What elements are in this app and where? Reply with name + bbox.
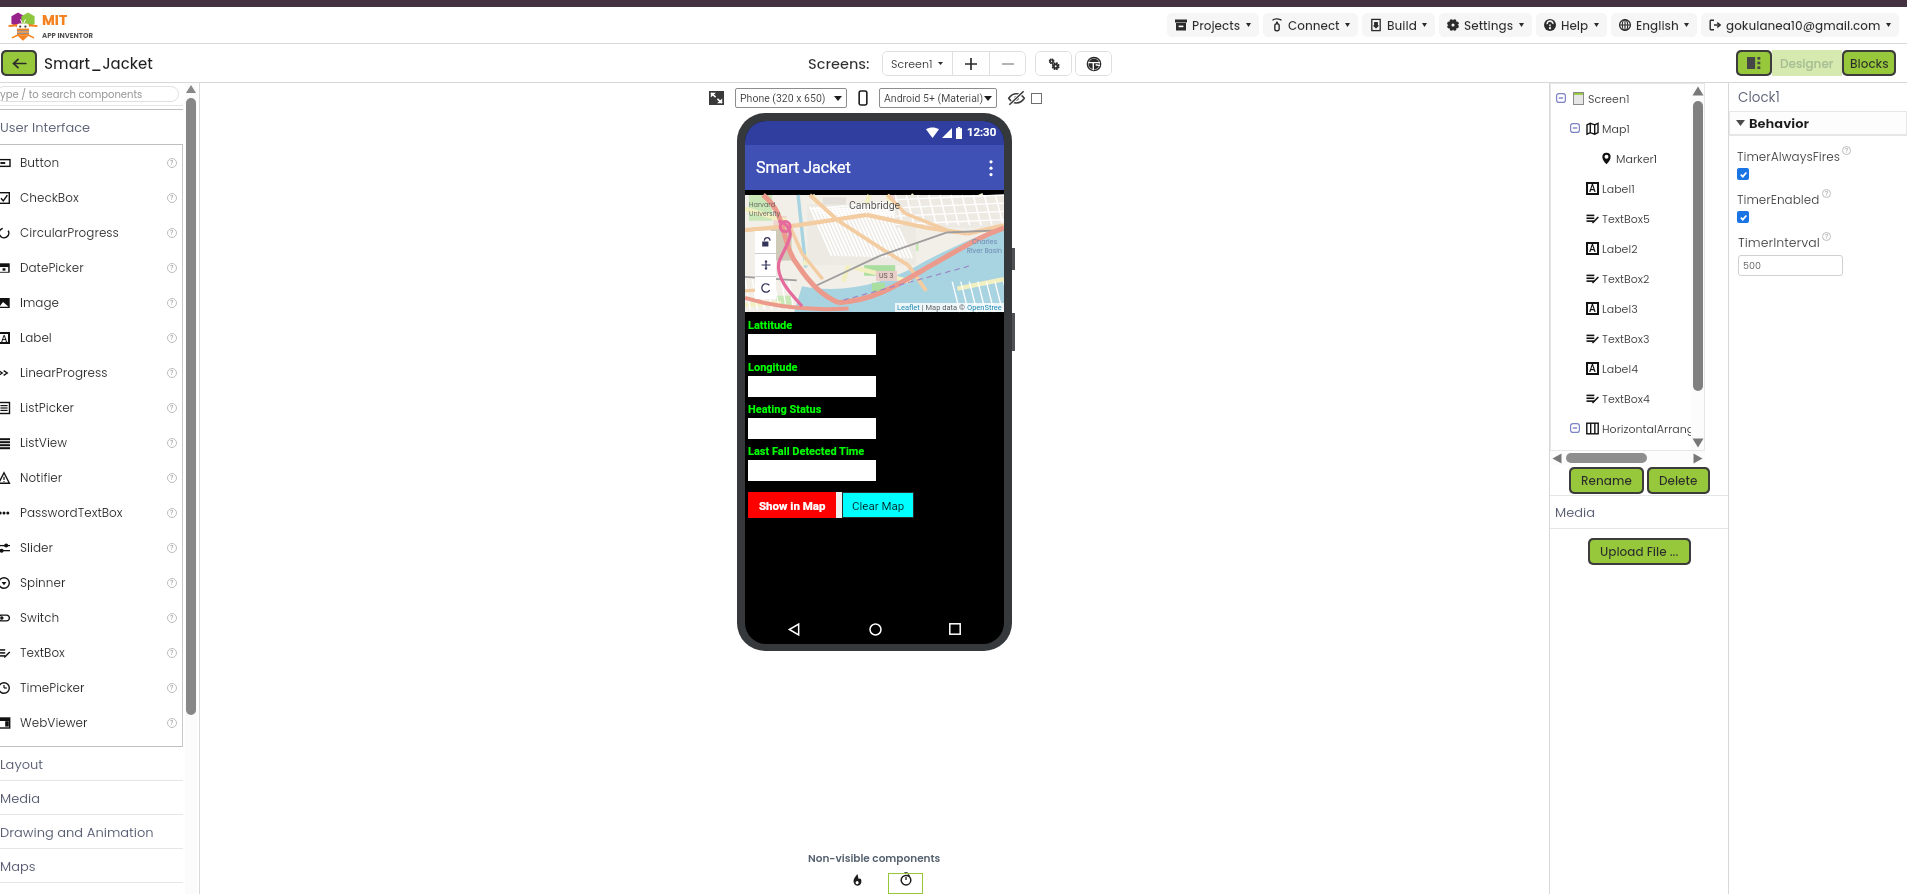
staticText: University <box>749 209 781 218</box>
button[interactable]: User Interface <box>0 110 183 144</box>
staticText: User Interface <box>0 118 91 136</box>
staticText: ? <box>170 544 174 552</box>
button[interactable]: Map control <box>755 254 776 276</box>
button[interactable]: Project properties <box>1035 51 1072 76</box>
staticText: ? <box>170 159 174 167</box>
button[interactable]: 500 <box>1738 255 1843 276</box>
button[interactable]: CheckBox <box>0 180 183 215</box>
staticText: ? <box>170 404 174 412</box>
button[interactable]: Screen1 <box>1550 83 1705 113</box>
button[interactable]: A <box>1550 293 1705 323</box>
button[interactable]: Map control <box>755 231 776 253</box>
staticText: WebViewer <box>20 714 88 731</box>
staticText: 500 <box>1743 259 1761 272</box>
button[interactable]: Button <box>0 145 183 180</box>
button[interactable]: TimerAlwaysFires <box>1737 168 1749 180</box>
staticText: Last Fall Detected Time <box>748 445 865 458</box>
button[interactable]: A <box>1550 353 1705 383</box>
staticText: Image <box>20 294 59 311</box>
button[interactable]: Preview size <box>709 91 724 105</box>
button[interactable]: Switch <box>0 600 183 635</box>
staticText: Projects <box>1192 17 1241 34</box>
button[interactable]: TextBox3 <box>1550 323 1705 353</box>
button[interactable]: Toggle checkbox <box>1031 93 1042 104</box>
staticText: Switch <box>20 609 60 626</box>
button[interactable]: Remove screen <box>990 51 1026 76</box>
staticText: Screen1 <box>1588 91 1630 106</box>
button[interactable]: TextBox <box>0 635 183 670</box>
button[interactable]: Maps <box>0 849 183 882</box>
button[interactable]: HorizontalArrang <box>1550 413 1705 443</box>
button[interactable]: Android 5+ (Material) <box>879 88 997 108</box>
button[interactable]: Delete <box>1649 469 1708 492</box>
button[interactable]: Publish to gallery <box>1075 51 1112 76</box>
button[interactable]: CircularProgress <box>0 215 183 250</box>
staticText: TimerAlwaysFires <box>1737 148 1840 165</box>
staticText: HorizontalArrang <box>1602 421 1695 436</box>
staticText: Longitude <box>748 361 798 374</box>
staticText: ? <box>170 334 174 342</box>
button[interactable]: TimerEnabled <box>1737 211 1749 223</box>
button[interactable]: DatePicker <box>0 250 183 285</box>
button[interactable]: PasswordTextBox <box>0 495 183 530</box>
staticText: CircularProgress <box>20 224 119 241</box>
button[interactable]: Help <box>1536 13 1607 37</box>
button[interactable]: Build <box>1362 13 1435 37</box>
button[interactable]: English <box>1611 13 1697 37</box>
button[interactable]: Designer <box>1772 50 1842 76</box>
button[interactable]: Rename <box>1571 469 1642 492</box>
button[interactable]: TimePicker <box>0 670 183 705</box>
button[interactable]: Map1 <box>1550 113 1705 143</box>
button[interactable]: Home <box>862 616 888 642</box>
staticText: Upload File ... <box>1600 543 1679 560</box>
button[interactable]: Behavior <box>1729 111 1907 135</box>
button[interactable]: Blocks <box>1844 52 1894 74</box>
button[interactable]: WebViewer <box>0 705 183 740</box>
button[interactable]: Settings <box>1439 13 1532 37</box>
button[interactable]: Projects <box>1167 13 1259 37</box>
staticText: gokulanea10@gmail.com <box>1726 17 1881 34</box>
button[interactable]: Map control <box>755 277 776 299</box>
button[interactable]: Back to project list <box>3 52 35 74</box>
button[interactable]: gokulanea10@gmail.com <box>1701 13 1899 37</box>
button[interactable]: A <box>1550 233 1705 263</box>
button[interactable]: TextBox2 <box>1550 263 1705 293</box>
staticText: | Map data © <box>920 303 967 312</box>
button[interactable]: TextBox4 <box>1550 383 1705 413</box>
button[interactable]: ListPicker <box>0 390 183 425</box>
button[interactable]: Add screen <box>953 51 989 76</box>
button[interactable]: Back <box>781 616 807 642</box>
button[interactable]: Media <box>0 781 183 814</box>
button[interactable]: Notifier <box>0 460 183 495</box>
button[interactable]: A <box>1550 173 1705 203</box>
button[interactable]: LinearProgress <box>0 355 183 390</box>
staticText: Screen1 <box>891 56 933 71</box>
button[interactable]: Spinner <box>0 565 183 600</box>
button[interactable]: Clear Map <box>842 492 914 518</box>
button[interactable]: Phone (320 x 650) <box>735 88 847 108</box>
button[interactable]: Phone preview <box>857 91 869 105</box>
button[interactable]: Image <box>0 285 183 320</box>
button[interactable]: A <box>0 320 183 355</box>
button[interactable]: Show in Map <box>748 492 836 518</box>
button[interactable]: Screen1 <box>882 51 952 76</box>
button[interactable]: Upload File ... <box>1590 540 1689 563</box>
button[interactable]: Show hidden components <box>1008 91 1025 105</box>
button[interactable]: Drawing and Animation <box>0 815 183 848</box>
button[interactable]: Slider <box>0 530 183 565</box>
button[interactable]: Recent apps <box>942 616 968 642</box>
button[interactable]: Layout <box>0 747 183 780</box>
staticText: Label <box>20 329 52 346</box>
button[interactable]: Marker1 <box>1550 143 1705 173</box>
button[interactable]: Toggle panels <box>1738 52 1770 74</box>
staticText: ? <box>1845 147 1848 154</box>
button[interactable]: Connect <box>1263 13 1358 37</box>
staticText: ListPicker <box>20 399 75 416</box>
button[interactable]: ype / to search components <box>0 86 179 102</box>
staticText: Leaflet <box>897 303 920 312</box>
staticText: Media <box>0 789 41 807</box>
staticText: Label1 <box>1602 181 1635 196</box>
staticText: A <box>1589 243 1596 255</box>
button[interactable]: TextBox5 <box>1550 203 1705 233</box>
button[interactable]: ListView <box>0 425 183 460</box>
